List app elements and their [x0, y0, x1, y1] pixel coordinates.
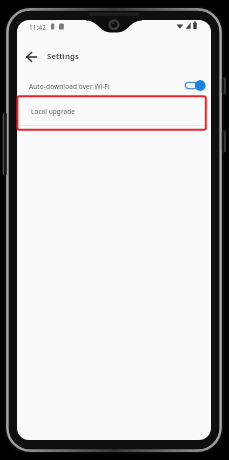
- staticText: 11:42: [29, 23, 47, 32]
- button[interactable]: Settings: [47, 51, 79, 62]
- button[interactable]: Local upgrade: [17, 97, 211, 126]
- button[interactable]: [21, 48, 47, 68]
- staticText: Settings: [47, 51, 79, 62]
- button[interactable]: Auto-download over Wi-Fi: [17, 73, 211, 99]
- staticText: Auto-download over Wi-Fi: [29, 82, 110, 91]
- staticText: Local upgrade: [31, 107, 75, 116]
